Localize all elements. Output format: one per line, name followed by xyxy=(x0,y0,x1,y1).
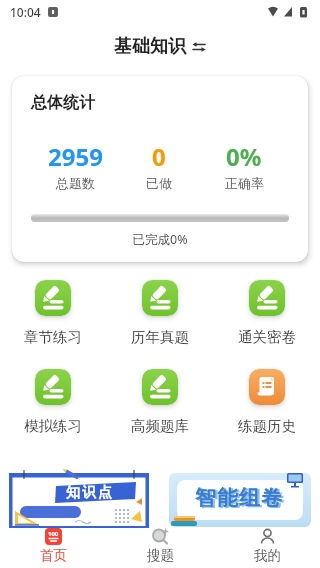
staticText: 高频题库 xyxy=(131,417,189,435)
button[interactable]: 智能组卷 xyxy=(169,473,311,527)
staticText: 智能组卷 xyxy=(169,485,310,511)
button[interactable]: 历年真题 xyxy=(124,280,196,346)
staticText: 已完成0% xyxy=(12,231,308,248)
staticText: 0% xyxy=(226,140,262,173)
staticText: 0 xyxy=(152,140,166,173)
staticText: 已做 xyxy=(146,175,172,191)
staticText: 历年真题 xyxy=(131,328,189,346)
button[interactable]: 基础知识 xyxy=(114,35,206,58)
staticText: 基础知识 xyxy=(114,35,186,58)
button[interactable]: 章节练习 xyxy=(17,280,89,346)
button[interactable]: 100 xyxy=(33,528,73,564)
button[interactable]: 练题历史 xyxy=(231,369,303,435)
staticText: 搜题 xyxy=(147,547,174,564)
staticText: 知识点 xyxy=(65,484,113,502)
staticText: 2959 xyxy=(48,140,103,173)
button[interactable]: 通关密卷 xyxy=(231,280,303,346)
staticText: 智能组卷 xyxy=(170,486,311,512)
staticText: 正确率 xyxy=(225,175,264,191)
button[interactable]: 搜题 xyxy=(140,528,180,564)
staticText: 练题历史 xyxy=(238,417,296,435)
staticText: 章节练习 xyxy=(24,328,82,346)
staticText: 模拟练习 xyxy=(24,417,82,435)
button[interactable]: 我的 xyxy=(247,528,287,564)
button[interactable]: 模拟练习 xyxy=(17,369,89,435)
staticText: 首页 xyxy=(40,547,67,564)
staticText: 总体统计 xyxy=(31,93,95,113)
staticText: 总题数 xyxy=(56,175,95,191)
staticText: 我的 xyxy=(254,547,281,564)
staticText: 10:04 xyxy=(10,4,41,20)
staticText: 100 xyxy=(48,530,59,538)
button[interactable]: 高频题库 xyxy=(124,369,196,435)
staticText: 通关密卷 xyxy=(238,328,296,346)
button[interactable]: 知识点 xyxy=(9,470,149,529)
